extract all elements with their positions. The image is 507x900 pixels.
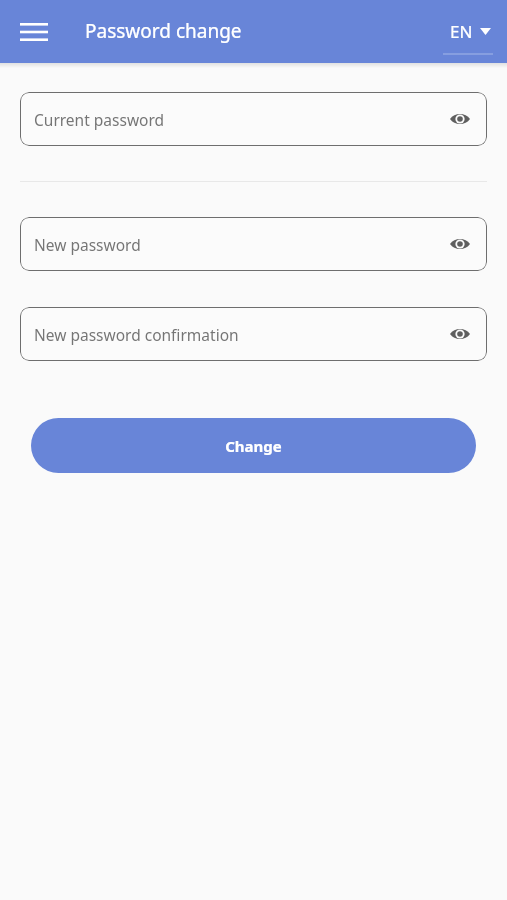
button[interactable]: Open navigation menu (8, 6, 60, 58)
button[interactable]: Show password (441, 315, 479, 353)
button[interactable]: Show password (441, 100, 479, 138)
staticText: New password confirmation (34, 324, 239, 345)
staticText: EN (450, 20, 473, 43)
button[interactable]: Show password (441, 225, 479, 263)
button[interactable]: Change (31, 418, 476, 473)
staticText: Change (225, 436, 282, 456)
button[interactable]: New password confirmation (20, 307, 487, 361)
button[interactable]: New password (20, 217, 487, 271)
staticText: New password (34, 234, 141, 255)
staticText: Password change (85, 18, 242, 44)
button[interactable]: Current password (20, 92, 487, 146)
button[interactable]: EN (444, 12, 497, 51)
staticText: Current password (34, 109, 165, 130)
